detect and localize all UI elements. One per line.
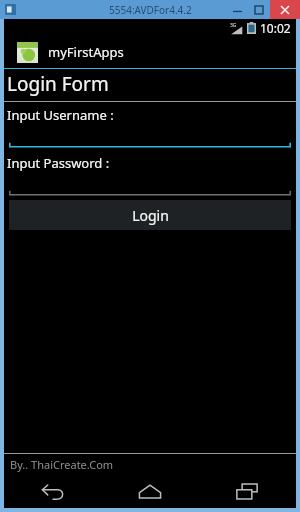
button[interactable]: Back (25, 475, 81, 508)
staticText: Login (132, 206, 169, 225)
staticText: By.. ThaiCreate.Com (10, 457, 114, 472)
staticText: Login Form (7, 71, 109, 97)
staticText: myFirstApps (48, 43, 124, 61)
staticText: 10:02 (260, 20, 291, 36)
staticText: 5554:AVDFor4.4.2 (109, 3, 192, 17)
button[interactable]: Minimize (226, 0, 248, 19)
staticText: 3G (230, 22, 237, 29)
button[interactable]: Close (270, 0, 300, 19)
button[interactable]: Recent apps (219, 475, 275, 508)
staticText: Input Password : (7, 154, 110, 172)
button[interactable] (9, 172, 291, 196)
staticText: Input Username : (7, 106, 114, 124)
button[interactable]: Home (122, 475, 178, 508)
button[interactable] (9, 124, 291, 148)
button[interactable]: Login (9, 200, 291, 230)
button[interactable]: Maximize (248, 0, 270, 19)
